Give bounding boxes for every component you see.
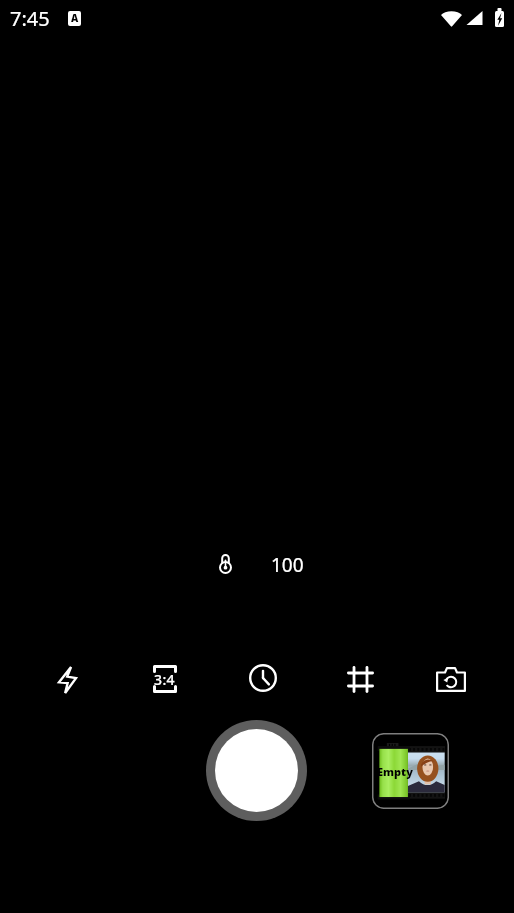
button[interactable]: Grid — [336, 655, 384, 703]
staticText: 3:4 — [154, 670, 176, 689]
button[interactable]: Flash — [43, 656, 91, 704]
button[interactable]: Camera preview, tap to focus — [0, 36, 514, 640]
button[interactable]: Take photo — [206, 720, 307, 821]
button[interactable]: Switch camera — [427, 655, 475, 703]
staticText: 100 — [271, 552, 304, 578]
button[interactable]: Aspect ratio — [141, 655, 189, 703]
button[interactable]: Timer — [239, 654, 287, 702]
staticText: A — [71, 11, 79, 25]
staticText: 7:45 — [10, 5, 50, 32]
button[interactable]: Open gallery — [372, 733, 449, 809]
staticText: Empty — [377, 764, 413, 779]
